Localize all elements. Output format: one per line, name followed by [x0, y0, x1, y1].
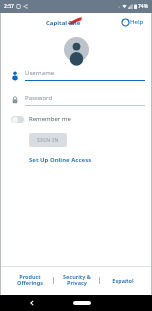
staticText: Help: [130, 18, 144, 26]
button[interactable]: Password: [1, 94, 151, 106]
staticText: Remember me: [29, 115, 71, 123]
staticText: Español: [112, 277, 134, 284]
button[interactable]: Product Offerings: [7, 271, 53, 289]
staticText: Capital: [46, 19, 68, 27]
button[interactable]: Security & Privacy: [54, 271, 99, 289]
button[interactable]: Español: [100, 275, 145, 286]
staticText: Product Offerings: [17, 273, 43, 287]
staticText: Security & Privacy: [63, 273, 91, 287]
staticText: Username: [25, 69, 55, 77]
staticText: Password: [25, 94, 53, 102]
button[interactable]: SIGN IN: [29, 133, 67, 147]
staticText: SIGN IN: [37, 137, 59, 144]
button[interactable]: Back: [27, 298, 37, 308]
staticText: 2:57: [4, 3, 14, 10]
staticText: One: [68, 19, 81, 27]
button[interactable]: Username: [1, 69, 151, 81]
button[interactable]: Remember me: [1, 113, 151, 125]
button[interactable]: Home: [73, 301, 91, 305]
button[interactable]: Set Up Online Access: [29, 156, 92, 164]
button[interactable]: Help: [121, 17, 145, 27]
staticText: 74%: [138, 3, 148, 10]
